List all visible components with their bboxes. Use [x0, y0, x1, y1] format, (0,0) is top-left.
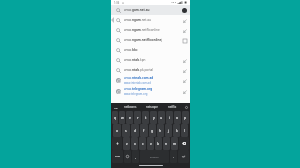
staticText: t: [145, 115, 147, 120]
staticText: r: [137, 115, 139, 120]
button[interactable]: More options: [183, 103, 189, 111]
button[interactable]: t: [142, 111, 149, 124]
button[interactable]: h: [157, 124, 164, 137]
staticText: GIF: [114, 106, 118, 109]
button[interactable]: d: [131, 124, 139, 137]
button[interactable]: shift: [112, 137, 122, 150]
button[interactable]: q: [112, 111, 118, 124]
button[interactable]: k: [173, 124, 180, 137]
button[interactable]: b: [155, 137, 162, 150]
button[interactable]: Open: [182, 38, 187, 43]
button[interactable]: www.gam.net.au: [111, 5, 190, 15]
button[interactable]: r: [134, 111, 141, 124]
button[interactable]: m: [171, 137, 178, 150]
staticText: a: [116, 128, 118, 133]
staticText: www.ngam.net.au: [124, 18, 151, 22]
staticText: www.telegram.org: [124, 92, 148, 96]
staticText: f: [143, 128, 145, 133]
button[interactable]: a: [113, 124, 121, 137]
staticText: o: [176, 115, 179, 120]
staticText: b: [157, 141, 160, 146]
button[interactable]: netscape: [141, 103, 162, 111]
button[interactable]: v: [147, 137, 154, 150]
button[interactable]: z: [123, 137, 130, 150]
staticText: c: [142, 141, 144, 146]
staticText: l: [184, 128, 185, 133]
button[interactable]: u: [158, 111, 165, 124]
button[interactable]: www.ngam.netflixonline: [111, 25, 190, 35]
button[interactable]: c: [139, 137, 146, 150]
staticText: www.interiab.com.ad: [124, 81, 151, 85]
button[interactable]: Edit query: [182, 28, 187, 33]
button[interactable]: Edit query: [182, 58, 187, 63]
staticText: e: [129, 115, 131, 120]
staticText: g: [151, 128, 154, 133]
button[interactable]: Symbols: [112, 150, 123, 163]
button[interactable]: x: [131, 137, 138, 150]
button[interactable]: netflix: [162, 103, 183, 111]
button[interactable]: www.telegram.org: [111, 86, 190, 97]
button[interactable]: Space: [140, 150, 169, 163]
button[interactable]: Edit query: [182, 78, 187, 83]
button[interactable]: w: [119, 111, 125, 124]
staticText: y: [153, 115, 155, 120]
button[interactable]: Period: [170, 150, 177, 163]
staticText: 1:06: [114, 1, 120, 5]
staticText: i: [169, 115, 170, 120]
button[interactable]: Clear: [182, 8, 187, 13]
button[interactable]: Edit query: [182, 18, 187, 23]
staticText: w: [121, 115, 124, 120]
staticText: www.ntab.pk.portal: [124, 68, 154, 72]
button[interactable]: p: [182, 111, 189, 124]
button[interactable]: www.ngam.netflixonlinej: [111, 35, 190, 45]
staticText: English: [150, 155, 159, 158]
staticText: www.bbc: [124, 48, 138, 52]
button[interactable]: l: [181, 124, 188, 137]
staticText: u: [160, 115, 163, 120]
button[interactable]: o: [174, 111, 181, 124]
staticText: v: [150, 141, 152, 146]
button[interactable]: f: [140, 124, 148, 137]
staticText: h: [159, 128, 162, 133]
staticText: p: [184, 115, 187, 120]
button[interactable]: y: [150, 111, 157, 124]
button[interactable]: i: [166, 111, 173, 124]
staticText: k: [176, 128, 178, 133]
button[interactable]: Emoji: [124, 150, 131, 163]
staticText: netbeans: [124, 105, 137, 109]
button[interactable]: netbeans: [119, 103, 141, 111]
staticText: www.ntab.kpn: [124, 58, 146, 62]
button[interactable]: g: [149, 124, 156, 137]
button[interactable]: s: [122, 124, 130, 137]
staticText: netflix: [168, 105, 177, 109]
staticText: ,: [135, 155, 136, 159]
button[interactable]: j: [165, 124, 172, 137]
button[interactable]: Keyboard settings: [112, 103, 119, 111]
staticText: www.ntnab.com.ad: [124, 76, 154, 80]
button[interactable]: Edit query: [182, 89, 187, 94]
staticText: www.ngam.netflixonline: [124, 28, 160, 32]
staticText: www.ngam.netflixonlinej: [124, 38, 163, 42]
staticText: x: [134, 141, 136, 146]
staticText: www.telegram.org: [124, 87, 153, 91]
button[interactable]: www.ngam.net.au: [111, 15, 190, 25]
button[interactable]: n: [163, 137, 170, 150]
staticText: j: [168, 128, 169, 133]
staticText: d: [134, 128, 137, 133]
button[interactable]: Edit query: [182, 68, 187, 73]
button[interactable]: e: [126, 111, 133, 124]
button[interactable]: Enter: [178, 150, 189, 163]
button[interactable]: www.ntab.kpn: [111, 55, 190, 65]
button[interactable]: Backspace: [179, 137, 189, 150]
button[interactable]: www.bbc: [111, 45, 190, 55]
staticText: ?123: [115, 155, 120, 158]
staticText: www.gam.net.au: [124, 8, 150, 12]
staticText: z: [126, 141, 128, 146]
staticText: s: [125, 128, 127, 133]
button[interactable]: www.ntab.pk.portal: [111, 65, 190, 75]
button[interactable]: Comma: [132, 150, 139, 163]
staticText: q: [114, 115, 117, 120]
staticText: .: [173, 155, 174, 159]
staticText: netscape: [146, 105, 158, 109]
button[interactable]: www.ntnab.com.ad: [111, 75, 190, 86]
